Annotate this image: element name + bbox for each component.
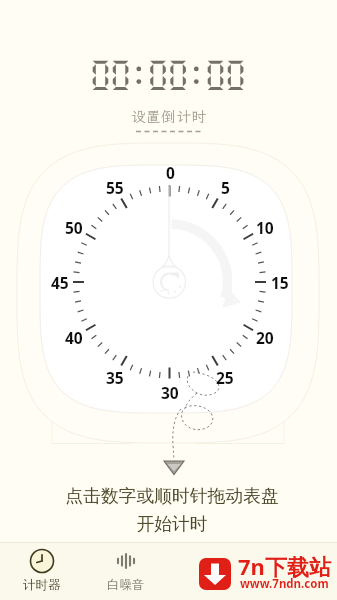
button[interactable]: 30 xyxy=(154,381,186,403)
button[interactable]: 55 xyxy=(99,176,131,198)
button[interactable]: 设置倒计时 xyxy=(129,107,209,135)
button[interactable]: 白噪音 xyxy=(84,542,168,600)
staticText: 30 xyxy=(161,382,179,403)
staticText: 点击数字或顺时针拖动表盘 xyxy=(65,485,279,507)
staticText: 15 xyxy=(271,272,289,293)
staticText: 45 xyxy=(51,272,69,293)
button[interactable]: 0 xyxy=(154,161,186,183)
button[interactable]: 20 xyxy=(249,326,281,348)
button[interactable]: 45 xyxy=(44,271,76,293)
button[interactable]: 5 xyxy=(209,176,241,198)
staticText: 55 xyxy=(106,177,124,198)
button[interactable]: 25 xyxy=(209,366,241,388)
button[interactable]: 35 xyxy=(99,366,131,388)
staticText: 开始计时 xyxy=(136,513,208,535)
staticText: 10 xyxy=(256,217,274,238)
staticText: 7n下载站 xyxy=(238,551,331,581)
staticText: 5 xyxy=(221,177,230,198)
staticText: 25 xyxy=(216,367,234,388)
staticText: 白噪音 xyxy=(107,577,145,593)
staticText: www.7ndn.com xyxy=(240,576,329,592)
staticText: 50 xyxy=(65,217,83,238)
staticText: 计时器 xyxy=(23,577,61,593)
staticText: 20 xyxy=(256,327,274,348)
button[interactable]: 10 xyxy=(249,216,281,238)
staticText: 40 xyxy=(65,327,83,348)
button[interactable]: 15 xyxy=(264,271,296,293)
staticText: 0 xyxy=(166,162,175,183)
button[interactable]: 40 xyxy=(58,326,90,348)
staticText: 设置倒计时 xyxy=(131,107,207,127)
staticText: 35 xyxy=(106,367,124,388)
button[interactable]: 计时器 xyxy=(0,542,84,600)
button[interactable]: 50 xyxy=(58,216,90,238)
